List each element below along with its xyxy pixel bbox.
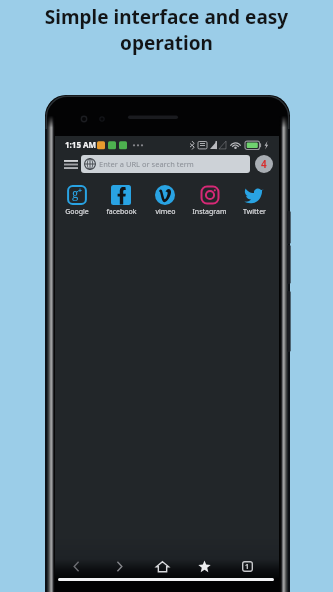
staticText: Simple interface and easy operation: [14, 4, 319, 56]
button[interactable]: facebook: [99, 185, 143, 217]
staticText: 1: [245, 562, 250, 572]
button[interactable]: g: [55, 185, 99, 217]
button[interactable]: Menu: [61, 155, 80, 173]
staticText: vimeo: [155, 207, 176, 217]
staticText: Google: [65, 207, 89, 217]
button[interactable]: Back: [55, 556, 98, 576]
button[interactable]: Home: [141, 556, 183, 576]
button[interactable]: Open tabs: [255, 155, 273, 173]
button[interactable]: Twitter: [232, 185, 276, 217]
button[interactable]: Instagram: [187, 185, 232, 217]
staticText: +: [78, 186, 83, 196]
staticText: 1:15 AM: [65, 139, 97, 150]
button[interactable]: Tabs: [226, 556, 268, 576]
staticText: Instagram: [192, 207, 227, 217]
button[interactable]: Forward: [98, 556, 141, 576]
button[interactable]: Enter a URL or search term: [81, 155, 250, 173]
staticText: g: [72, 185, 79, 201]
button[interactable]: vimeo: [143, 185, 187, 217]
staticText: 4: [261, 157, 267, 171]
staticText: facebook: [106, 207, 137, 217]
button[interactable]: Bookmarks: [183, 556, 226, 576]
staticText: Enter a URL or search term: [99, 159, 194, 169]
staticText: Twitter: [243, 207, 266, 217]
